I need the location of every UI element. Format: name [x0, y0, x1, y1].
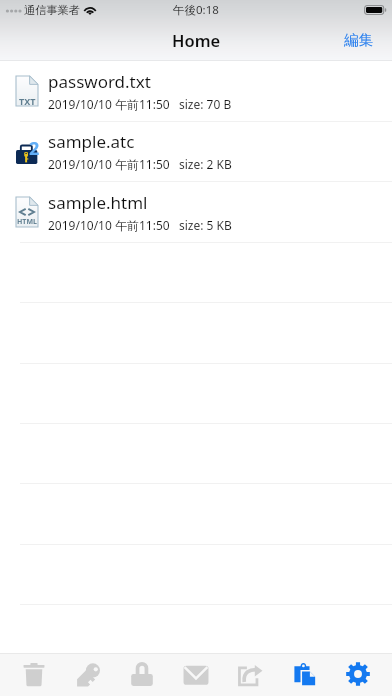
button[interactable]: Mail	[169, 653, 223, 696]
staticText: 2019/10/10 午前11:50	[48, 96, 170, 112]
button[interactable]: Delete	[7, 653, 61, 696]
staticText: size: 70 B	[179, 96, 232, 112]
button[interactable]: 編集	[334, 22, 383, 58]
staticText: size: 2 KB	[179, 156, 232, 172]
button[interactable]: Lock	[115, 653, 169, 696]
button[interactable]: Copy	[277, 653, 331, 696]
staticText: 2019/10/10 午前11:50	[48, 217, 170, 233]
button[interactable]: HTML	[0, 182, 392, 242]
staticText: 通信事業者	[24, 3, 80, 17]
button[interactable]: Share	[223, 653, 277, 696]
button[interactable]: Settings	[331, 653, 385, 696]
staticText: sample.atc	[48, 130, 135, 153]
staticText: TXT	[19, 95, 36, 107]
button[interactable]: Password	[61, 653, 115, 696]
button[interactable]: 2	[0, 121, 392, 181]
staticText: HTML	[17, 217, 37, 227]
staticText: 午後0:18	[173, 2, 219, 18]
staticText: size: 5 KB	[179, 217, 232, 233]
button[interactable]: TXT	[0, 61, 392, 121]
staticText: 編集	[344, 31, 373, 49]
staticText: 2	[29, 136, 40, 161]
staticText: Home	[172, 29, 221, 51]
staticText: sample.html	[48, 191, 148, 214]
staticText: password.txt	[48, 70, 151, 93]
staticText: 2019/10/10 午前11:50	[48, 156, 170, 172]
